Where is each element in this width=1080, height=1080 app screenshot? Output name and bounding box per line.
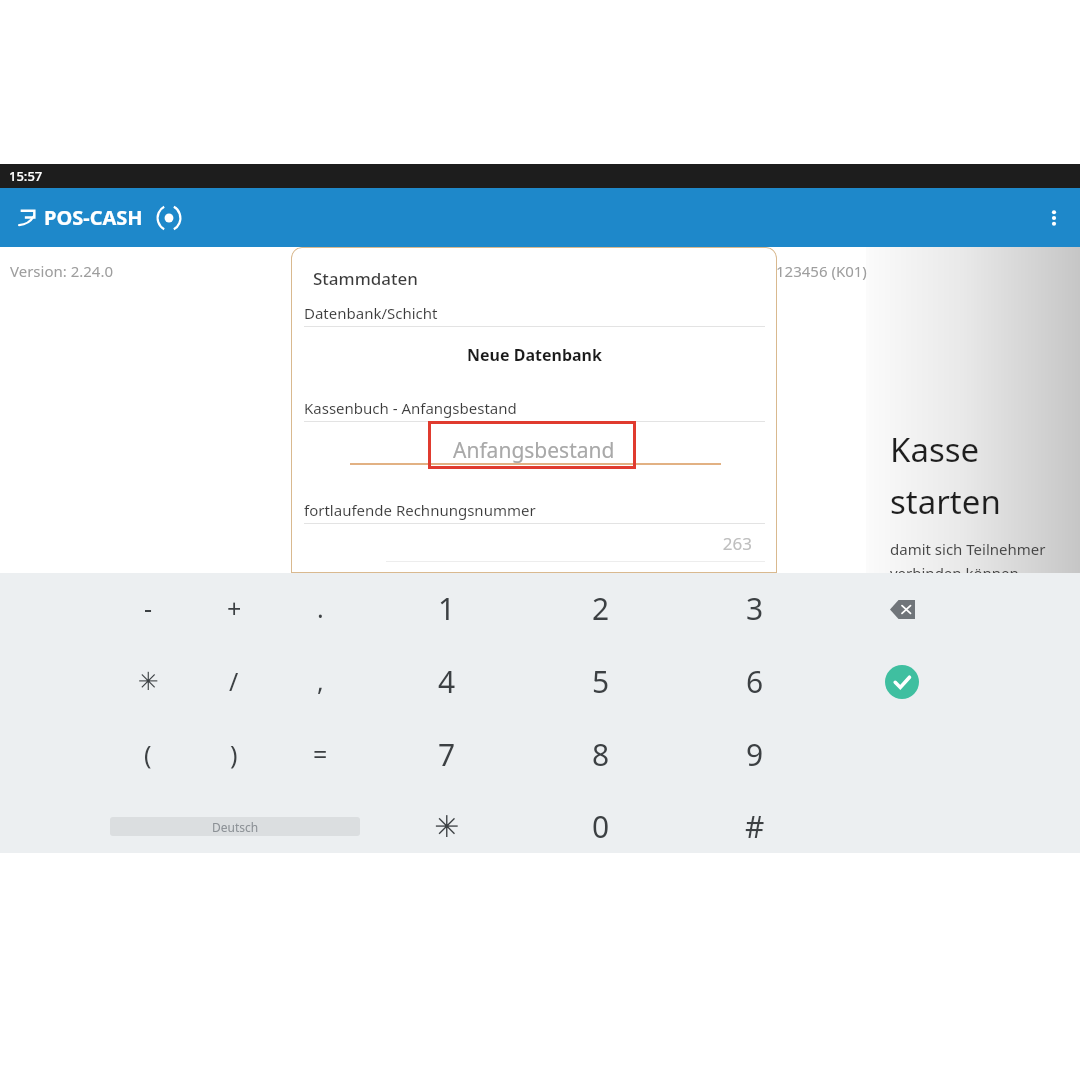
staticText: ( xyxy=(144,737,152,771)
button[interactable]: 3 xyxy=(712,572,798,644)
button[interactable]: ✳ xyxy=(404,790,490,862)
staticText: 123456 (K01) xyxy=(776,261,867,281)
button[interactable]: ) xyxy=(191,718,277,790)
staticText: / xyxy=(229,664,239,698)
button[interactable]: + xyxy=(191,572,277,644)
staticText: Version: 2.24.0 xyxy=(10,261,114,281)
staticText: , xyxy=(317,664,324,698)
staticText: verbinden können xyxy=(890,563,1019,583)
staticText: Kassenbuch - Anfangsbestand xyxy=(304,398,517,418)
staticText: 6 xyxy=(746,661,764,702)
button[interactable]: Anfangsbestand xyxy=(291,427,777,473)
button[interactable]: 7 xyxy=(404,718,490,790)
button[interactable]: / xyxy=(191,645,277,717)
button[interactable]: . xyxy=(277,572,363,644)
staticText: ✳ xyxy=(138,667,159,696)
staticText: Neue Datenbank xyxy=(467,344,602,366)
button[interactable]: 1 xyxy=(404,572,490,644)
staticText: Anfangsbestand xyxy=(453,436,615,465)
staticText: 7 xyxy=(438,734,456,775)
button[interactable]: 9 xyxy=(712,718,798,790)
staticText: 9 xyxy=(746,734,764,775)
button[interactable]: 4 xyxy=(404,645,490,717)
staticText: 8 xyxy=(592,734,610,775)
button[interactable]: POS-CASH xyxy=(18,204,182,231)
staticText: 4 xyxy=(438,661,456,702)
staticText: 0 xyxy=(592,806,610,847)
button[interactable]: 5 xyxy=(558,645,644,717)
staticText: Stammdaten xyxy=(313,267,418,290)
button[interactable]: , xyxy=(277,645,363,717)
staticText: # xyxy=(745,806,765,847)
staticText: 5 xyxy=(592,661,610,702)
staticText: fortlaufende Rechnungsnummer xyxy=(304,500,536,520)
button[interactable]: 8 xyxy=(558,718,644,790)
staticText: 1 xyxy=(438,588,456,629)
staticText: POS-CASH xyxy=(44,204,143,231)
staticText: starten xyxy=(890,479,1001,524)
button[interactable]: 0 xyxy=(558,790,644,862)
button[interactable]: - xyxy=(105,572,191,644)
staticText: Datenbank/Schicht xyxy=(304,303,438,323)
button[interactable]: ✳ xyxy=(105,645,191,717)
button[interactable]: ( xyxy=(105,718,191,790)
button[interactable]: Confirm xyxy=(866,646,938,718)
staticText: Kasse xyxy=(890,427,980,472)
button[interactable]: 6 xyxy=(712,645,798,717)
button[interactable]: More options xyxy=(1028,192,1080,244)
staticText: = xyxy=(313,737,328,771)
button[interactable]: Kasse xyxy=(866,247,1080,573)
button[interactable]: 2 xyxy=(558,572,644,644)
button[interactable]: Deutsch xyxy=(110,817,360,836)
staticText: + xyxy=(227,591,242,625)
staticText: Deutsch xyxy=(212,819,259,835)
staticText: ) xyxy=(230,737,238,771)
staticText: 15:57 xyxy=(9,167,43,185)
staticText: 3 xyxy=(746,588,764,629)
staticText: damit sich Teilnehmer xyxy=(890,539,1046,559)
staticText: 263 xyxy=(304,532,752,555)
button[interactable]: Neue Datenbank xyxy=(291,338,777,372)
button[interactable]: # xyxy=(712,790,798,862)
button[interactable]: Backspace xyxy=(866,573,938,645)
button[interactable]: = xyxy=(277,718,363,790)
staticText: ✳ xyxy=(434,809,460,844)
staticText: . xyxy=(317,591,324,625)
staticText: - xyxy=(144,591,153,625)
staticText: 2 xyxy=(592,588,610,629)
